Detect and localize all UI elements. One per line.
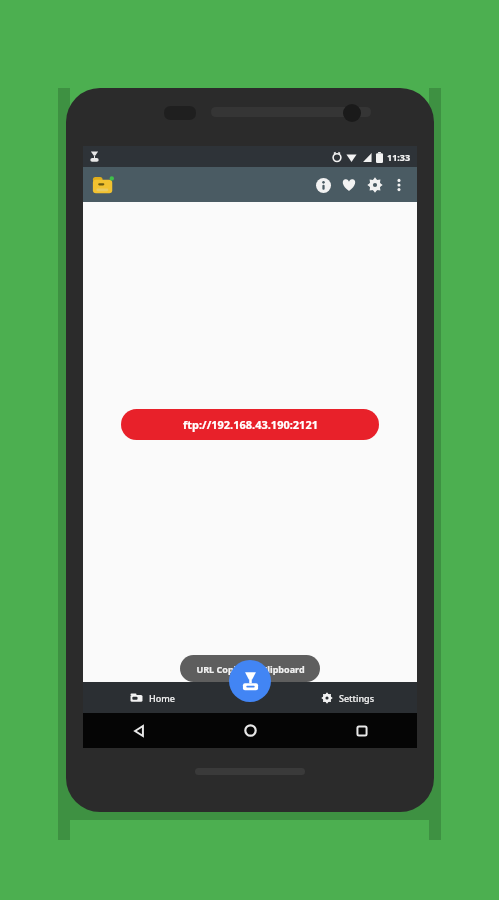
button[interactable]: Favorites [336,172,362,198]
button[interactable]: ftp://192.168.43.190:2121 [121,409,379,440]
button[interactable]: App icon [90,172,116,198]
button[interactable]: Recent apps [306,713,417,748]
button[interactable]: Back [83,713,195,748]
button[interactable]: Home [195,713,306,748]
staticText: Settings [339,692,375,704]
staticText: ftp://192.168.43.190:2121 [183,417,318,432]
button[interactable]: Home [83,682,221,713]
button[interactable]: Info [310,172,336,198]
staticText: 11:33 [387,151,411,163]
button[interactable]: Settings [362,172,388,198]
button[interactable]: Start FTP server [229,660,271,702]
staticText: URL Copied to Clipboard [196,663,305,675]
button[interactable]: More options [388,174,410,196]
staticText: Home [149,692,175,704]
button[interactable]: Settings [279,682,417,713]
